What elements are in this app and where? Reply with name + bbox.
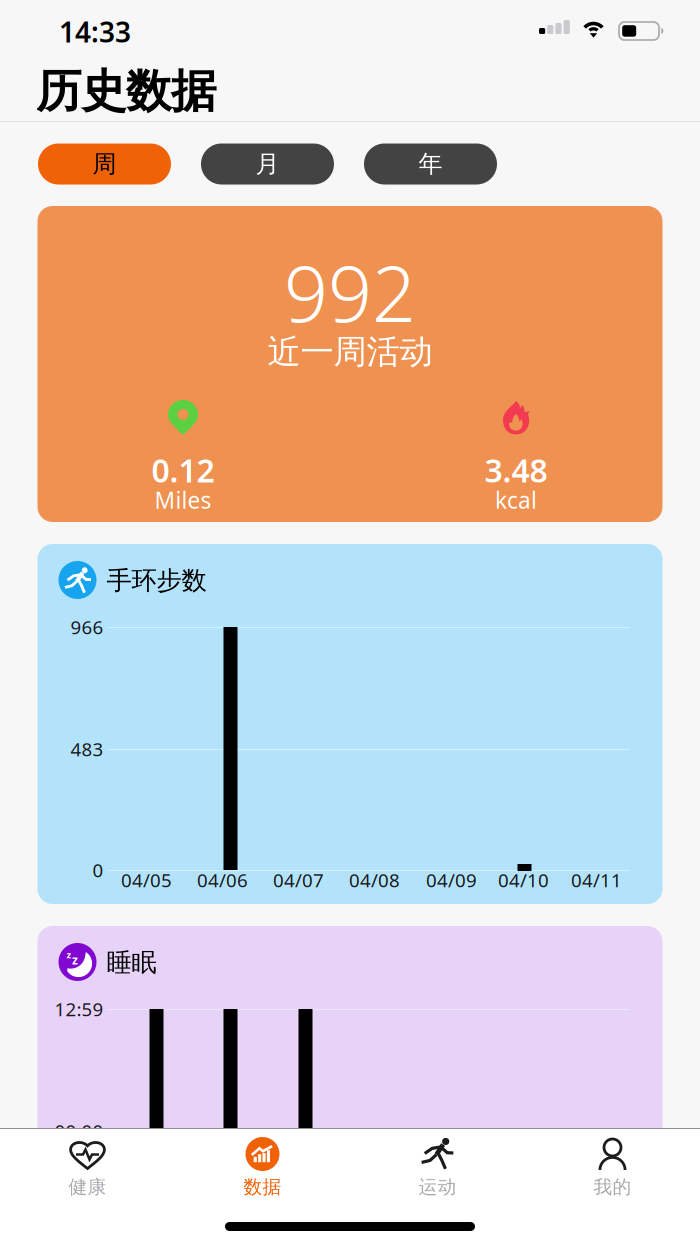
button[interactable]: 数据	[175, 1129, 350, 1215]
staticText: 966	[70, 615, 103, 639]
staticText: 04/11	[571, 868, 622, 892]
staticText: 992	[284, 241, 416, 343]
staticText: 历史数据	[36, 64, 216, 119]
staticText: 健康	[68, 1175, 106, 1198]
staticText: 00:00	[54, 1119, 103, 1143]
button[interactable]: 月	[201, 143, 334, 184]
button[interactable]: 周	[38, 143, 171, 184]
staticText: 12:59	[54, 997, 103, 1021]
button[interactable]: 健康	[0, 1129, 175, 1215]
staticText: 数据	[243, 1175, 281, 1198]
staticText: 04/07	[273, 868, 324, 892]
staticText: 我的	[593, 1175, 631, 1198]
button[interactable]: 运动	[350, 1129, 525, 1215]
button[interactable]: 年	[364, 143, 497, 184]
staticText: z	[66, 948, 71, 961]
staticText: 04/08	[349, 868, 400, 892]
staticText: 睡眠	[106, 947, 156, 978]
staticText: 周	[92, 149, 116, 179]
staticText: Miles	[154, 485, 211, 515]
staticText: 04/05	[121, 868, 172, 892]
staticText: 04/09	[426, 868, 477, 892]
staticText: 483	[70, 737, 103, 761]
button[interactable]: 我的	[525, 1129, 700, 1215]
staticText: 04/10	[498, 868, 549, 892]
staticText: 0	[92, 858, 103, 882]
staticText: 近一周活动	[267, 331, 432, 372]
staticText: 月	[255, 149, 279, 179]
staticText: 14:33	[59, 13, 131, 50]
staticText: 0.12	[151, 449, 214, 491]
staticText: 04/06	[197, 868, 248, 892]
staticText: 运动	[418, 1175, 456, 1198]
staticText: 3.48	[484, 449, 547, 491]
staticText: kcal	[495, 485, 537, 515]
staticText: 手环步数	[106, 565, 206, 596]
staticText: 年	[418, 149, 442, 179]
staticText: z	[72, 952, 78, 968]
